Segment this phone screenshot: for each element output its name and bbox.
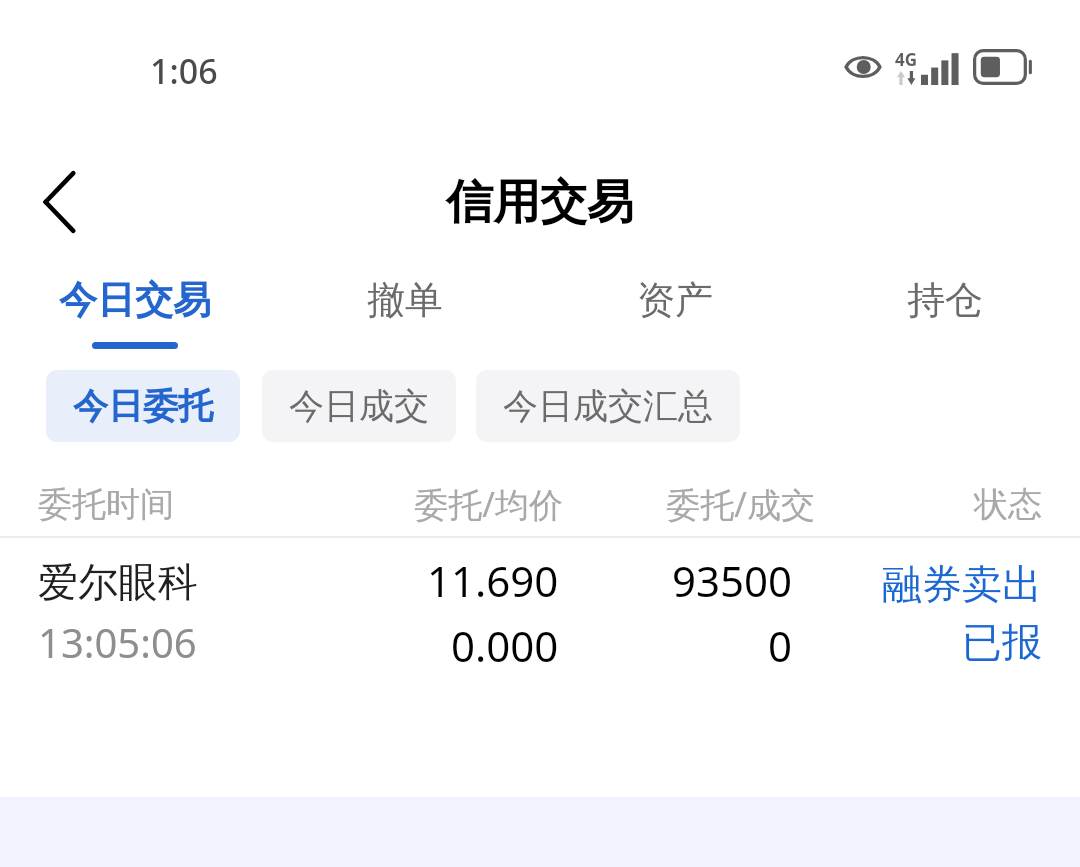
button[interactable]: 今日成交 <box>262 370 456 442</box>
button[interactable]: 持仓 <box>810 266 1080 362</box>
staticText: 爱尔眼科 <box>38 557 198 607</box>
button[interactable]: 今日委托 <box>46 370 240 442</box>
staticText: 持仓 <box>907 276 983 324</box>
staticText: 委托/成交 <box>563 481 815 527</box>
staticText: 4G <box>895 48 918 71</box>
staticText: 融券卖出 <box>882 559 1042 609</box>
staticText: 状态 <box>815 483 1042 526</box>
staticText: 今日成交 <box>289 384 429 428</box>
staticText: 1:06 <box>150 48 218 94</box>
staticText: 撤单 <box>367 276 443 324</box>
staticText: 11.690 <box>427 552 559 609</box>
button[interactable]: Back <box>10 152 110 252</box>
staticText: 13:05:06 <box>38 615 197 669</box>
staticText: 0.000 <box>451 617 559 674</box>
staticText: 93500 <box>672 552 793 609</box>
staticText: 今日交易 <box>59 276 211 324</box>
button[interactable]: 今日交易 <box>0 266 270 362</box>
staticText: 信用交易 <box>446 173 634 232</box>
staticText: 0 <box>768 617 793 674</box>
staticText: 委托/均价 <box>311 481 563 527</box>
staticText: 已报 <box>962 617 1042 667</box>
button[interactable]: 撤单 <box>270 266 540 362</box>
staticText: 今日委托 <box>73 384 213 428</box>
staticText: 今日成交汇总 <box>503 384 713 428</box>
button[interactable]: 资产 <box>540 266 810 362</box>
button[interactable]: 爱尔眼科 <box>0 538 1080 692</box>
staticText: 资产 <box>637 276 713 324</box>
button[interactable]: 今日成交汇总 <box>476 370 740 442</box>
staticText: 委托时间 <box>38 483 311 526</box>
